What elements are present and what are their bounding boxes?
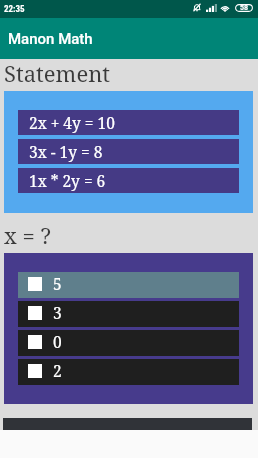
staticText: 3: [53, 302, 62, 323]
staticText: 58: [240, 4, 249, 12]
staticText: 5: [53, 273, 62, 294]
button[interactable]: 5: [18, 272, 239, 298]
button[interactable]: 3x - 1y = 8: [18, 139, 239, 164]
button[interactable]: 1x * 2y = 6: [18, 168, 239, 193]
staticText: 2x + 4y = 10: [29, 112, 115, 133]
button[interactable]: 2: [18, 359, 239, 385]
button[interactable]: 2x + 4y = 10: [18, 110, 239, 135]
staticText: 1x * 2y = 6: [29, 170, 106, 191]
other: Silent mode: [193, 3, 201, 12]
other: Wi-Fi: [220, 4, 230, 12]
staticText: Manon Math: [8, 30, 93, 48]
staticText: x = ?: [4, 220, 51, 250]
staticText: 22:35: [4, 4, 25, 15]
staticText: Statement: [4, 58, 111, 88]
other: Mobile signal: [206, 4, 217, 12]
button[interactable]: 0: [18, 330, 239, 356]
staticText: 3x - 1y = 8: [29, 141, 103, 162]
button[interactable]: 3: [18, 301, 239, 327]
staticText: 0: [53, 331, 62, 352]
staticText: 2: [53, 360, 62, 381]
